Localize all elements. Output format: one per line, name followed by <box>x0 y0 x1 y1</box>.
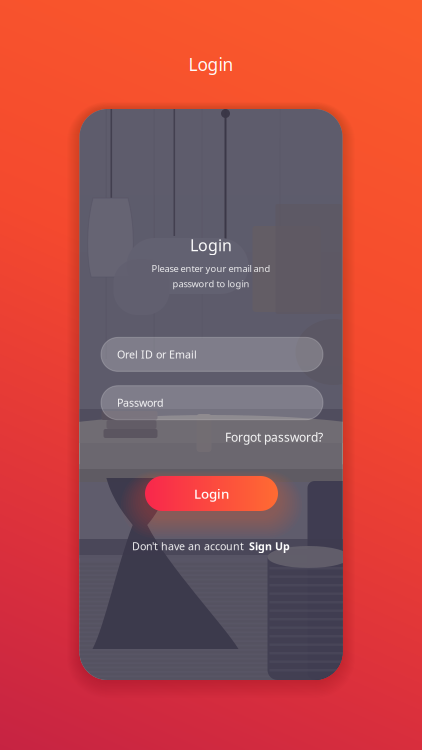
button[interactable]: Forgot password? <box>101 429 323 445</box>
staticText: Forgot password? <box>225 429 323 445</box>
staticText: Login <box>188 53 233 76</box>
button[interactable]: Orel ID or Email <box>101 337 323 371</box>
staticText: password to login <box>172 277 249 290</box>
button[interactable]: Login <box>145 476 278 511</box>
staticText: Orel ID or Email <box>117 347 197 361</box>
button[interactable]: Don't have an account <box>132 539 290 553</box>
staticText: Please enter your email and <box>151 262 270 274</box>
staticText: Password <box>117 396 164 410</box>
staticText: Login <box>194 485 229 502</box>
staticText: Login <box>190 234 232 256</box>
staticText: Don't have an account <box>132 539 244 553</box>
staticText: Sign Up <box>249 539 290 553</box>
button[interactable]: Password <box>101 386 323 420</box>
